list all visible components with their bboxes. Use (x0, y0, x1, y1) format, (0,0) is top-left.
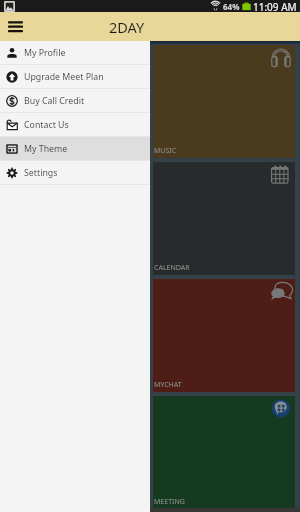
button[interactable]: Settings (0, 161, 150, 184)
staticText: CALENDAR (154, 263, 190, 273)
button[interactable]: CALENDAR (153, 162, 295, 275)
button[interactable]: Buy Call Credit (0, 89, 150, 112)
button[interactable]: Contact Us (0, 113, 150, 136)
button[interactable]: MYCHAT (153, 279, 295, 392)
staticText: Buy Call Credit (24, 95, 85, 107)
button[interactable]: My Profile (0, 41, 150, 64)
staticText: Contact Us (24, 119, 69, 131)
button[interactable]: My Theme (0, 137, 150, 160)
button[interactable]: Open navigation drawer (0, 12, 30, 41)
staticText: My Theme (24, 143, 68, 155)
staticText: 64% (223, 1, 240, 12)
staticText: Upgrade Meet Plan (24, 71, 104, 83)
staticText: Settings (24, 167, 58, 179)
staticText: 2DAY (109, 17, 145, 37)
staticText: MYCHAT (154, 380, 182, 390)
button[interactable]: MUSIC (153, 45, 295, 158)
staticText: MEETING (154, 497, 185, 507)
staticText: MUSIC (154, 146, 177, 156)
staticText: My Profile (24, 47, 66, 59)
button[interactable]: Upgrade Meet Plan (0, 65, 150, 88)
staticText: 11:09 AM (253, 0, 297, 12)
button[interactable]: MEETING (153, 396, 295, 509)
